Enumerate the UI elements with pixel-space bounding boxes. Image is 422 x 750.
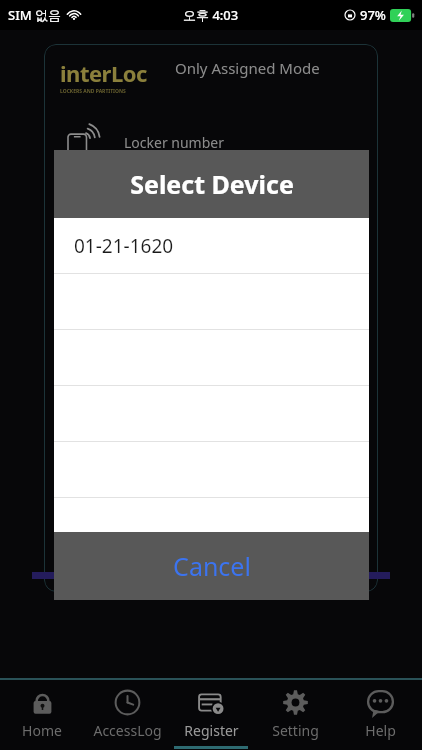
button[interactable]: Home (0, 680, 84, 750)
staticText: 97% (360, 6, 386, 24)
button[interactable]: Register (169, 680, 253, 750)
staticText: 01-21-1620 (74, 233, 174, 259)
button[interactable]: Access Log (85, 680, 169, 750)
button[interactable]: Help (338, 680, 422, 750)
other: Access Log (114, 689, 141, 716)
staticText: Cancel (173, 549, 251, 583)
staticText: 오후 4:03 (183, 6, 239, 24)
staticText: Only Assigned Mode (175, 58, 320, 78)
staticText: interLoc (60, 58, 147, 88)
staticText: SIM 없음 (8, 6, 62, 24)
staticText: Home (22, 721, 62, 740)
button[interactable] (54, 442, 369, 498)
staticText: Select Device (130, 167, 294, 201)
staticText: Setting (272, 721, 319, 740)
other: Register (198, 689, 225, 716)
staticText: Register (184, 721, 239, 740)
other: Home (29, 689, 56, 716)
button[interactable]: Cancel (54, 532, 369, 600)
button[interactable]: Setting (253, 680, 337, 750)
staticText: LOCKERS AND PARTITIONS (60, 88, 126, 95)
button[interactable]: 01-21-1620 (54, 218, 369, 274)
button[interactable] (54, 330, 369, 386)
staticText: AccessLog (93, 721, 162, 740)
other: Setting (282, 689, 309, 716)
staticText: Help (365, 721, 396, 740)
other: Help (367, 689, 394, 716)
staticText: Locker number (124, 133, 225, 152)
button[interactable] (54, 386, 369, 442)
button[interactable] (54, 274, 369, 330)
